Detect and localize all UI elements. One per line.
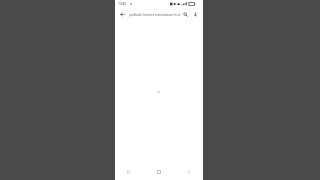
button[interactable]: podlaski krolext tstmulation hrd <box>129 8 180 20</box>
staticText: podlaski krolext tstmulation hrd <box>129 12 180 17</box>
staticText: 10:45 <box>118 2 127 6</box>
button[interactable]: Back <box>118 10 127 19</box>
button[interactable]: Recent apps <box>123 166 135 178</box>
button[interactable]: Home <box>153 166 165 178</box>
button[interactable]: Back <box>183 166 195 178</box>
button[interactable]: Voice search <box>191 10 200 19</box>
button[interactable]: Search <box>181 10 190 19</box>
